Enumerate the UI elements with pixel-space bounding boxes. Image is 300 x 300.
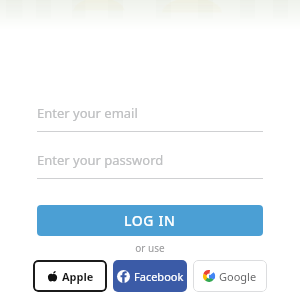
- staticText: or use: [0, 241, 300, 255]
- button[interactable]: Enter your email: [37, 102, 263, 132]
- staticText: Apple: [62, 269, 94, 284]
- button[interactable]: Enter your password: [37, 149, 263, 179]
- button[interactable]: Apple: [33, 260, 107, 292]
- staticText: Google: [219, 269, 257, 284]
- button[interactable]: Google: [193, 260, 267, 292]
- button[interactable]: Facebook: [113, 260, 187, 292]
- staticText: Enter your password: [37, 151, 164, 169]
- staticText: Enter your email: [37, 104, 138, 122]
- button[interactable]: LOG IN: [37, 205, 263, 236]
- staticText: LOG IN: [124, 211, 176, 230]
- staticText: Facebook: [134, 269, 184, 284]
